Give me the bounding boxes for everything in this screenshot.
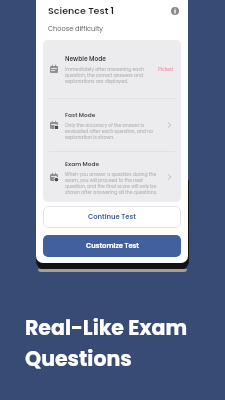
staticText: Immediately after answering each questio… xyxy=(65,66,147,84)
button[interactable]: Information xyxy=(168,4,182,18)
button[interactable]: Fast Mode xyxy=(43,99,181,151)
staticText: Questions xyxy=(25,344,132,373)
staticText: Picked xyxy=(158,66,174,72)
staticText: Real-Like Exam xyxy=(25,313,188,342)
button[interactable]: Continue Test xyxy=(43,206,181,228)
staticText: When you answer a question during the ex… xyxy=(65,171,161,195)
staticText: Continue Test xyxy=(88,212,136,222)
staticText: Fast Mode xyxy=(65,111,96,119)
button[interactable]: Customize Test xyxy=(43,235,181,257)
button[interactable]: Newbie Mode xyxy=(43,40,181,98)
staticText: Science Test 1 xyxy=(48,4,115,17)
staticText: Exam Mode xyxy=(65,160,100,168)
staticText: Only the accuracy of the answer is evalu… xyxy=(65,122,161,140)
staticText: Newbie Mode xyxy=(65,55,107,63)
staticText: Choose difficulty xyxy=(48,24,104,33)
button[interactable]: Exam Mode xyxy=(43,152,181,202)
staticText: Customize Test xyxy=(86,241,139,251)
